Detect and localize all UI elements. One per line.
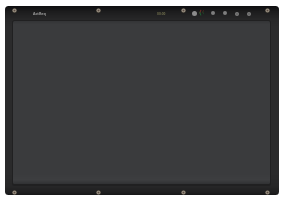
button[interactable]: Network traffic xyxy=(198,9,207,17)
button[interactable]: Signal xyxy=(211,11,215,15)
button[interactable]: Battery xyxy=(223,11,227,15)
staticText: 00:00 xyxy=(157,11,166,15)
button[interactable]: ActReq xyxy=(33,11,46,16)
button[interactable]: Settings xyxy=(235,12,239,16)
staticText: ActReq xyxy=(33,11,46,16)
button[interactable]: Account xyxy=(247,12,251,16)
button[interactable]: Status xyxy=(192,11,197,16)
